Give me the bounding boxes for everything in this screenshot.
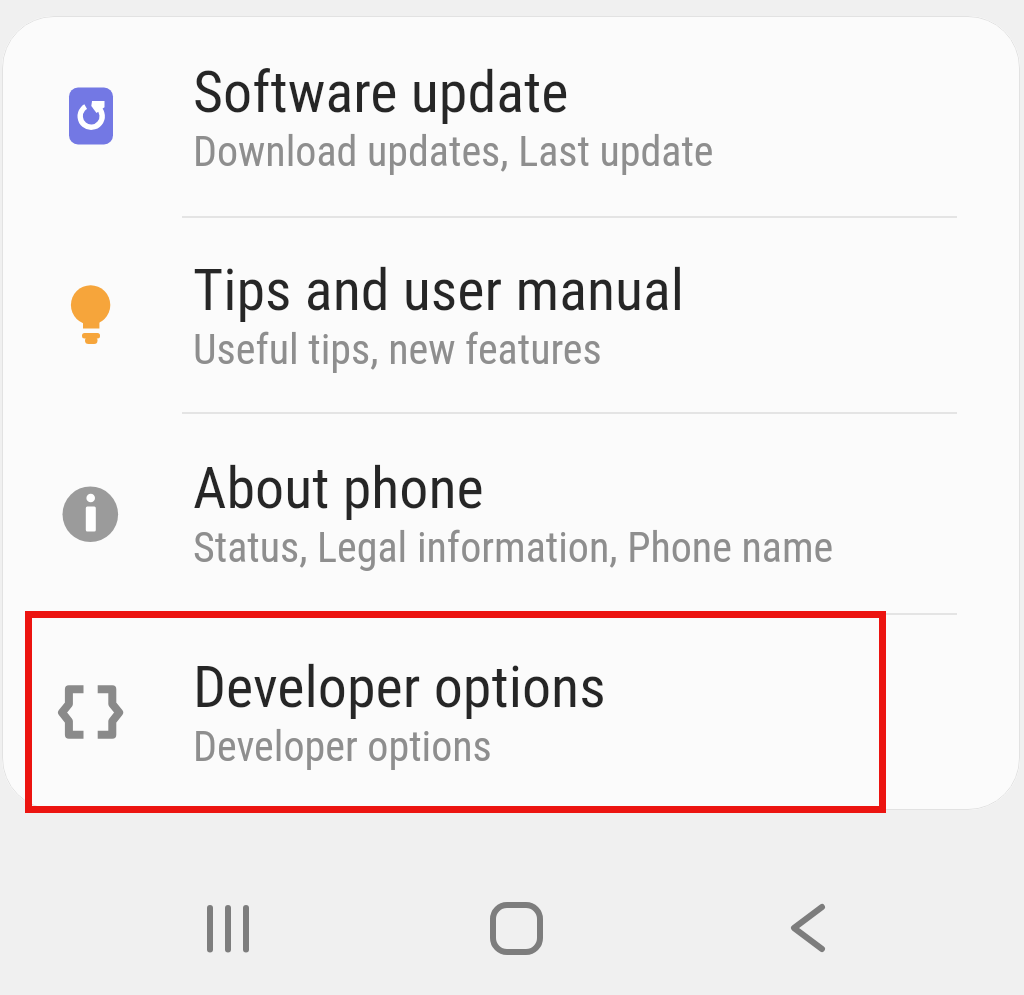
button[interactable]: [470, 880, 565, 975]
staticText: Download updates, Last update: [193, 127, 714, 176]
button[interactable]: [185, 880, 280, 975]
staticText: Tips and user manual: [193, 256, 685, 324]
staticText: About phone: [193, 454, 484, 522]
button[interactable]: [2, 412, 1020, 612]
staticText: Status, Legal information, Phone name: [193, 523, 834, 572]
staticText: Software update: [193, 58, 569, 126]
button[interactable]: [2, 216, 1020, 412]
staticText: Developer options: [193, 722, 492, 771]
staticText: Developer options: [193, 653, 606, 721]
button[interactable]: [2, 16, 1020, 216]
button[interactable]: [2, 612, 1020, 810]
staticText: Useful tips, new features: [193, 325, 602, 374]
button[interactable]: [765, 880, 860, 975]
